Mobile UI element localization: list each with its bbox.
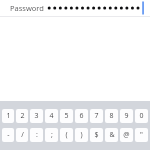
button[interactable]: Key 2 bbox=[16, 109, 28, 123]
staticText: 4 bbox=[49, 111, 54, 121]
button[interactable]: Key " bbox=[135, 128, 148, 142]
staticText: 2 bbox=[20, 111, 25, 121]
button[interactable]: Key 7 bbox=[90, 109, 103, 123]
staticText: - bbox=[7, 130, 10, 140]
button[interactable]: Key / bbox=[16, 128, 28, 142]
staticText: 9 bbox=[124, 111, 129, 121]
button[interactable]: Key @ bbox=[120, 128, 133, 142]
button[interactable]: Password field bbox=[0, 0, 150, 16]
staticText: $ bbox=[94, 130, 99, 140]
button[interactable]: Key $ bbox=[90, 128, 103, 142]
button[interactable]: Key - bbox=[2, 128, 14, 142]
staticText: 3 bbox=[34, 111, 39, 121]
staticText: ; bbox=[51, 130, 53, 140]
staticText: " bbox=[140, 130, 143, 140]
button[interactable]: Key 0 bbox=[135, 109, 148, 123]
staticText: : bbox=[36, 130, 38, 140]
button[interactable]: Key 3 bbox=[30, 109, 43, 123]
button[interactable]: Key 6 bbox=[75, 109, 88, 123]
staticText: @ bbox=[123, 130, 130, 140]
button[interactable]: Key & bbox=[105, 128, 118, 142]
staticText: 1 bbox=[6, 111, 11, 121]
button[interactable]: Key 9 bbox=[120, 109, 133, 123]
button[interactable]: Key : bbox=[30, 128, 43, 142]
button[interactable]: Key ) bbox=[75, 128, 88, 142]
staticText: ) bbox=[80, 130, 83, 140]
button[interactable]: Key 8 bbox=[105, 109, 118, 123]
staticText: 6 bbox=[79, 111, 84, 121]
staticText: ( bbox=[65, 130, 68, 140]
button[interactable]: Key 5 bbox=[60, 109, 73, 123]
button[interactable]: Key ( bbox=[60, 128, 73, 142]
staticText: & bbox=[109, 130, 115, 140]
staticText: 8 bbox=[109, 111, 114, 121]
button[interactable]: Key 1 bbox=[2, 109, 14, 123]
staticText: 0 bbox=[139, 111, 144, 121]
button[interactable]: Key ; bbox=[45, 128, 58, 142]
staticText: 5 bbox=[64, 111, 69, 121]
button[interactable]: Key 4 bbox=[45, 109, 58, 123]
staticText: / bbox=[21, 130, 24, 140]
staticText: Password bbox=[10, 3, 44, 13]
staticText: 7 bbox=[94, 111, 99, 121]
